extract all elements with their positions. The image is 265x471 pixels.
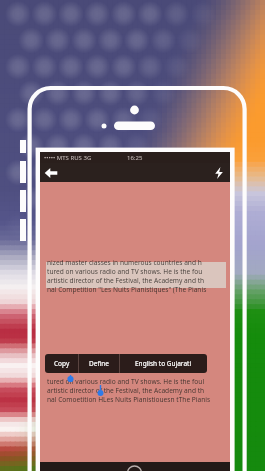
- staticText: nal Competition "Les Nuits Pianistiques"…: [47, 285, 207, 294]
- staticText: Copy: [54, 359, 70, 368]
- button[interactable]: Back: [40, 163, 62, 182]
- staticText: tured on various radio and TV shows. He …: [47, 377, 205, 386]
- button[interactable]: Define: [79, 354, 119, 373]
- staticText: tured on various radio and TV shows. He …: [47, 267, 203, 276]
- staticText: English to Gujarati: [135, 359, 192, 368]
- staticText: artistic director of the Festival, the A…: [47, 276, 205, 285]
- staticText: Define: [89, 359, 110, 368]
- staticText: nal Comoetition HLes Nuits Pianistiouesn…: [47, 395, 211, 404]
- button[interactable]: Flash: [208, 163, 230, 182]
- staticText: ••••• MTS RUS 3G: [44, 154, 92, 162]
- staticText: artistic director of the Festival, the A…: [47, 386, 205, 395]
- button[interactable]: Copy: [45, 354, 78, 373]
- staticText: 16:25: [127, 154, 143, 162]
- button[interactable]: English to Gujarati: [120, 354, 207, 373]
- staticText: nized master classes in numerous countri…: [47, 258, 202, 267]
